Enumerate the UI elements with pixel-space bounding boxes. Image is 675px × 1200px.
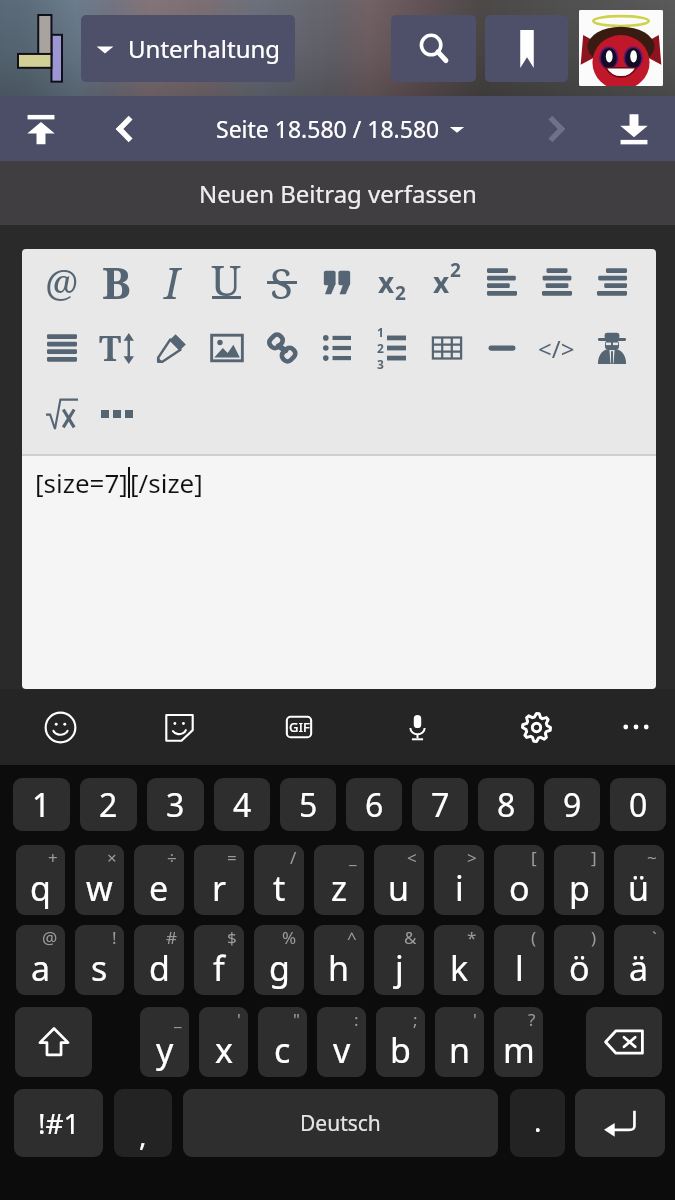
button[interactable]: _ [140, 1007, 189, 1077]
button[interactable]: Profile [579, 10, 663, 86]
button[interactable] [309, 315, 364, 381]
button[interactable]: </> [529, 315, 584, 381]
button[interactable]: $ [194, 925, 244, 995]
button[interactable]: 1 [364, 315, 419, 381]
button[interactable]: x [419, 249, 474, 315]
button[interactable]: ÷ [134, 845, 184, 915]
button[interactable]: / [254, 845, 304, 915]
staticText: × [107, 846, 117, 869]
button[interactable] [199, 315, 254, 381]
button[interactable]: ) [554, 925, 604, 995]
button[interactable] [34, 315, 89, 381]
button[interactable]: Previous page [98, 103, 150, 155]
button[interactable] [529, 249, 584, 315]
button[interactable]: Scroll to top [12, 100, 70, 158]
button[interactable]: @ [34, 249, 89, 315]
button[interactable]: ' [199, 1007, 248, 1077]
button[interactable]: B [89, 249, 144, 315]
staticText: $ [227, 926, 237, 949]
button[interactable] [144, 315, 199, 381]
button[interactable]: [ [494, 845, 544, 915]
button[interactable]: ( [494, 925, 544, 995]
button[interactable] [584, 315, 639, 381]
button[interactable]: _ [314, 845, 364, 915]
button[interactable]: ! [75, 925, 124, 995]
button[interactable]: @ [16, 925, 65, 995]
button[interactable]: 8 [478, 778, 534, 831]
button[interactable]: T [89, 315, 144, 381]
button[interactable]: Deutsch [183, 1089, 498, 1157]
button[interactable]: , [114, 1089, 172, 1157]
button[interactable]: Voice input [358, 689, 477, 765]
button[interactable]: % [254, 925, 304, 995]
button[interactable]: 9 [544, 778, 600, 831]
button[interactable]: More [596, 689, 675, 765]
button[interactable]: + [16, 845, 65, 915]
button[interactable]: U [199, 249, 254, 315]
button[interactable]: Search [391, 15, 476, 82]
button[interactable]: S [254, 249, 309, 315]
button[interactable] [254, 315, 309, 381]
button[interactable]: 7 [412, 778, 468, 831]
staticText: a [31, 945, 51, 991]
button[interactable]: GIF [239, 689, 358, 765]
button[interactable]: . [510, 1089, 565, 1157]
button[interactable]: ` [614, 925, 664, 995]
staticText: ` [652, 926, 657, 949]
button[interactable]: I [144, 249, 199, 315]
button[interactable]: x [364, 249, 419, 315]
button[interactable]: 5 [280, 778, 336, 831]
button[interactable]: * [434, 925, 484, 995]
button[interactable]: " [258, 1007, 307, 1077]
button[interactable] [89, 381, 144, 447]
button[interactable]: Settings [477, 689, 596, 765]
staticText: l [515, 945, 524, 991]
staticText: [/size] [130, 465, 203, 500]
staticText: 1 [32, 783, 51, 827]
button[interactable]: < [374, 845, 424, 915]
button[interactable]: 2 [80, 778, 137, 831]
button[interactable]: 0 [610, 778, 666, 831]
button[interactable] [309, 249, 364, 315]
staticText: < [407, 846, 417, 869]
button[interactable]: & [374, 925, 424, 995]
button[interactable]: 4 [214, 778, 270, 831]
button[interactable]: Next page [531, 103, 583, 155]
button[interactable]: : [317, 1007, 366, 1077]
button[interactable]: Stickers [120, 689, 239, 765]
button[interactable]: 1 [13, 778, 70, 831]
button[interactable]: Enter [575, 1089, 665, 1157]
button[interactable]: Shift [15, 1007, 92, 1077]
button[interactable] [474, 249, 529, 315]
button[interactable]: = [194, 845, 244, 915]
button[interactable]: 6 [346, 778, 402, 831]
button[interactable] [419, 315, 474, 381]
button[interactable] [474, 315, 529, 381]
staticText: v [333, 1027, 351, 1073]
button[interactable]: ; [376, 1007, 425, 1077]
button[interactable]: ] [554, 845, 604, 915]
staticText: e [149, 865, 169, 911]
button[interactable]: × [75, 845, 124, 915]
staticText: " [293, 1008, 300, 1031]
button[interactable] [584, 249, 639, 315]
button[interactable]: Bookmarks [485, 15, 568, 82]
staticText: !#1 [38, 1104, 80, 1142]
button[interactable]: # [134, 925, 184, 995]
button[interactable]: ' [435, 1007, 484, 1077]
button[interactable] [34, 381, 89, 447]
button[interactable]: ~ [614, 845, 664, 915]
button[interactable]: Seite 18.580 / 18.580 [212, 113, 469, 144]
button[interactable]: Jump to bottom [605, 100, 663, 158]
button[interactable]: Home [12, 14, 68, 82]
button[interactable]: !#1 [14, 1089, 103, 1157]
button[interactable]: Backspace [586, 1007, 662, 1077]
staticText: w [86, 865, 113, 911]
button[interactable]: > [434, 845, 484, 915]
button[interactable]: ^ [314, 925, 364, 995]
button[interactable]: Unterhaltung [81, 15, 295, 82]
button[interactable]: Emoji [0, 689, 120, 765]
button[interactable]: 3 [147, 778, 204, 831]
button[interactable]: ? [494, 1007, 543, 1077]
staticText: x [433, 263, 450, 301]
